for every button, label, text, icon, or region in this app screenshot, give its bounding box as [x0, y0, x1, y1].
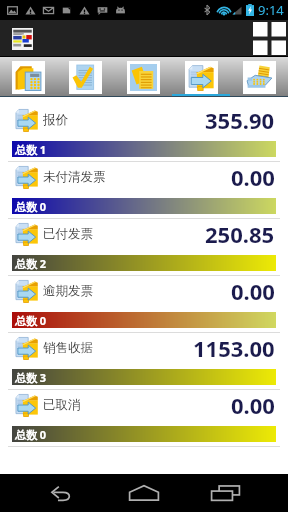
- staticText: 总数 2: [15, 256, 47, 271]
- button[interactable]: Home: [120, 474, 168, 512]
- staticText: 250.85: [205, 219, 275, 249]
- staticText: 355.90: [205, 105, 275, 135]
- button[interactable]: Back: [36, 474, 84, 512]
- staticText: 总数 0: [15, 313, 47, 328]
- button[interactable]: 未付清发票: [0, 162, 288, 219]
- staticText: 1153.00: [193, 333, 275, 363]
- staticText: 总数 1: [15, 142, 47, 157]
- staticText: 9:14: [258, 1, 284, 19]
- button[interactable]: 销售收据: [0, 333, 288, 390]
- button[interactable]: Tab 5: [230, 57, 288, 97]
- button[interactable]: Grid view: [243, 22, 288, 55]
- button[interactable]: Tab 4: [172, 57, 230, 97]
- staticText: 逾期发票: [43, 283, 93, 299]
- staticText: 0.00: [231, 162, 275, 192]
- staticText: 未付清发票: [43, 169, 106, 185]
- button[interactable]: Tab 1: [0, 57, 57, 97]
- staticText: 总数 3: [15, 370, 47, 385]
- staticText: 0.00: [231, 276, 275, 306]
- button[interactable]: Tab 2: [57, 57, 114, 97]
- button[interactable]: Recent apps: [201, 474, 249, 512]
- staticText: 0.00: [231, 390, 275, 420]
- button[interactable]: App home: [0, 28, 43, 50]
- staticText: 总数 0: [15, 199, 47, 214]
- button[interactable]: 已付发票: [0, 219, 288, 276]
- button[interactable]: 已取消: [0, 390, 288, 447]
- button[interactable]: 报价: [0, 105, 288, 162]
- staticText: 报价: [43, 112, 68, 128]
- staticText: 已付发票: [43, 226, 93, 242]
- staticText: 总数 0: [15, 427, 47, 442]
- button[interactable]: 逾期发票: [0, 276, 288, 333]
- staticText: 已取消: [43, 397, 81, 413]
- staticText: 销售收据: [43, 340, 93, 356]
- button[interactable]: Tab 3: [114, 57, 172, 97]
